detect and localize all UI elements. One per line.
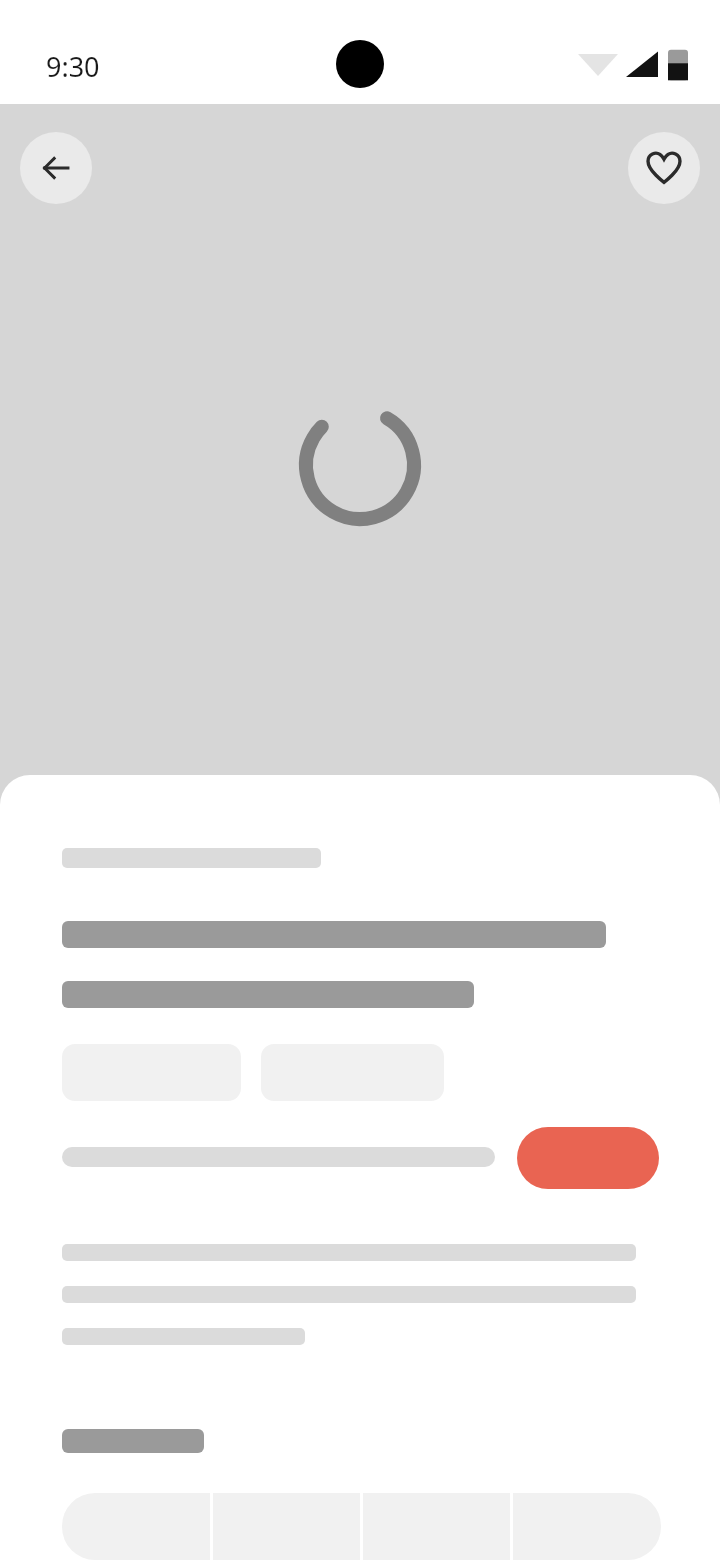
button[interactable]: Back — [20, 132, 92, 204]
button[interactable]: Primary action — [517, 1127, 659, 1189]
staticText: 9:30 — [46, 48, 100, 85]
button[interactable]: Favorite — [628, 132, 700, 204]
